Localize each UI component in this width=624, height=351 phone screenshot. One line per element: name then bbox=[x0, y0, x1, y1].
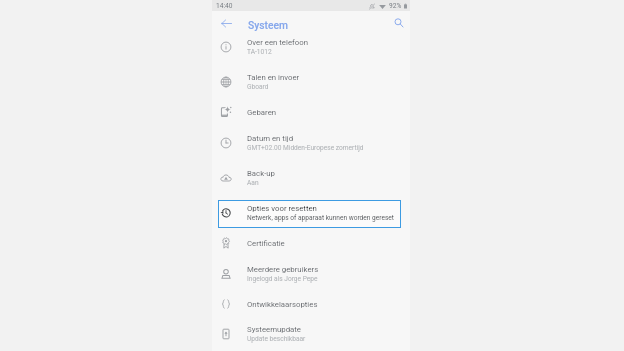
staticText: 92% bbox=[389, 2, 402, 10]
staticText: Opties voor resetten bbox=[247, 204, 317, 213]
staticText: Meerdere gebruikers bbox=[247, 265, 319, 274]
staticText: GMT+02.00 Midden-Europese zomertijd bbox=[247, 144, 364, 152]
button[interactable]: Talen en invoer bbox=[218, 69, 401, 97]
button[interactable]: Systeemupdate bbox=[218, 321, 401, 349]
staticText: Systeemupdate bbox=[247, 325, 301, 334]
button[interactable]: Ontwikkelaarsopties bbox=[218, 296, 401, 314]
staticText: Ontwikkelaarsopties bbox=[247, 300, 318, 309]
button[interactable]: Gebaren bbox=[218, 104, 401, 122]
staticText: 14:40 bbox=[216, 2, 233, 10]
staticText: Talen en invoer bbox=[247, 73, 300, 82]
staticText: Update beschikbaar bbox=[247, 335, 306, 343]
staticText: TA-1012 bbox=[247, 48, 272, 56]
button[interactable]: Back bbox=[218, 15, 234, 31]
staticText: Back-up bbox=[247, 169, 275, 178]
staticText: Gboard bbox=[247, 83, 269, 91]
staticText: Netwerk, apps of apparaat kunnen worden … bbox=[247, 214, 395, 222]
staticText: Datum en tijd bbox=[247, 134, 294, 143]
staticText: Systeem bbox=[248, 19, 289, 31]
button[interactable]: Certificatie bbox=[218, 235, 401, 253]
button[interactable]: Back-up bbox=[218, 165, 401, 193]
button[interactable]: Datum en tijd bbox=[218, 130, 401, 158]
staticText: Over een telefoon bbox=[247, 38, 308, 47]
staticText: Gebaren bbox=[247, 108, 277, 117]
staticText: Aan bbox=[247, 179, 259, 187]
staticText: Certificatie bbox=[247, 239, 285, 248]
staticText: Ingelogd als Jorge Pepe bbox=[247, 275, 318, 283]
button[interactable]: Over een telefoon bbox=[218, 34, 401, 62]
button[interactable]: Meerdere gebruikers bbox=[218, 261, 401, 289]
button[interactable]: Search bbox=[391, 15, 407, 31]
button[interactable]: Opties voor resetten bbox=[218, 200, 401, 228]
